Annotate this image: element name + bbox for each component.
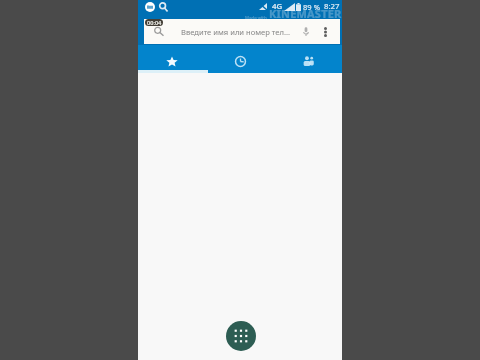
staticText: 8:27: [324, 1, 340, 12]
button[interactable]: Contacts: [274, 45, 342, 73]
staticText: KINEMASTER: [269, 6, 342, 21]
staticText: Введите имя или номер тел...: [181, 27, 291, 37]
button[interactable]: Voice search: [299, 25, 313, 39]
staticText: 4G: [272, 1, 283, 12]
staticText: Made with: [245, 15, 267, 21]
button[interactable]: Recents: [206, 45, 274, 73]
staticText: 89 %: [303, 2, 320, 12]
button[interactable]: Dialpad: [226, 321, 256, 351]
button[interactable]: Favourites: [138, 45, 206, 73]
button[interactable]: More options: [318, 25, 332, 39]
staticText: 00:04: [147, 19, 162, 26]
button[interactable]: Введите имя или номер тел...: [144, 19, 340, 44]
